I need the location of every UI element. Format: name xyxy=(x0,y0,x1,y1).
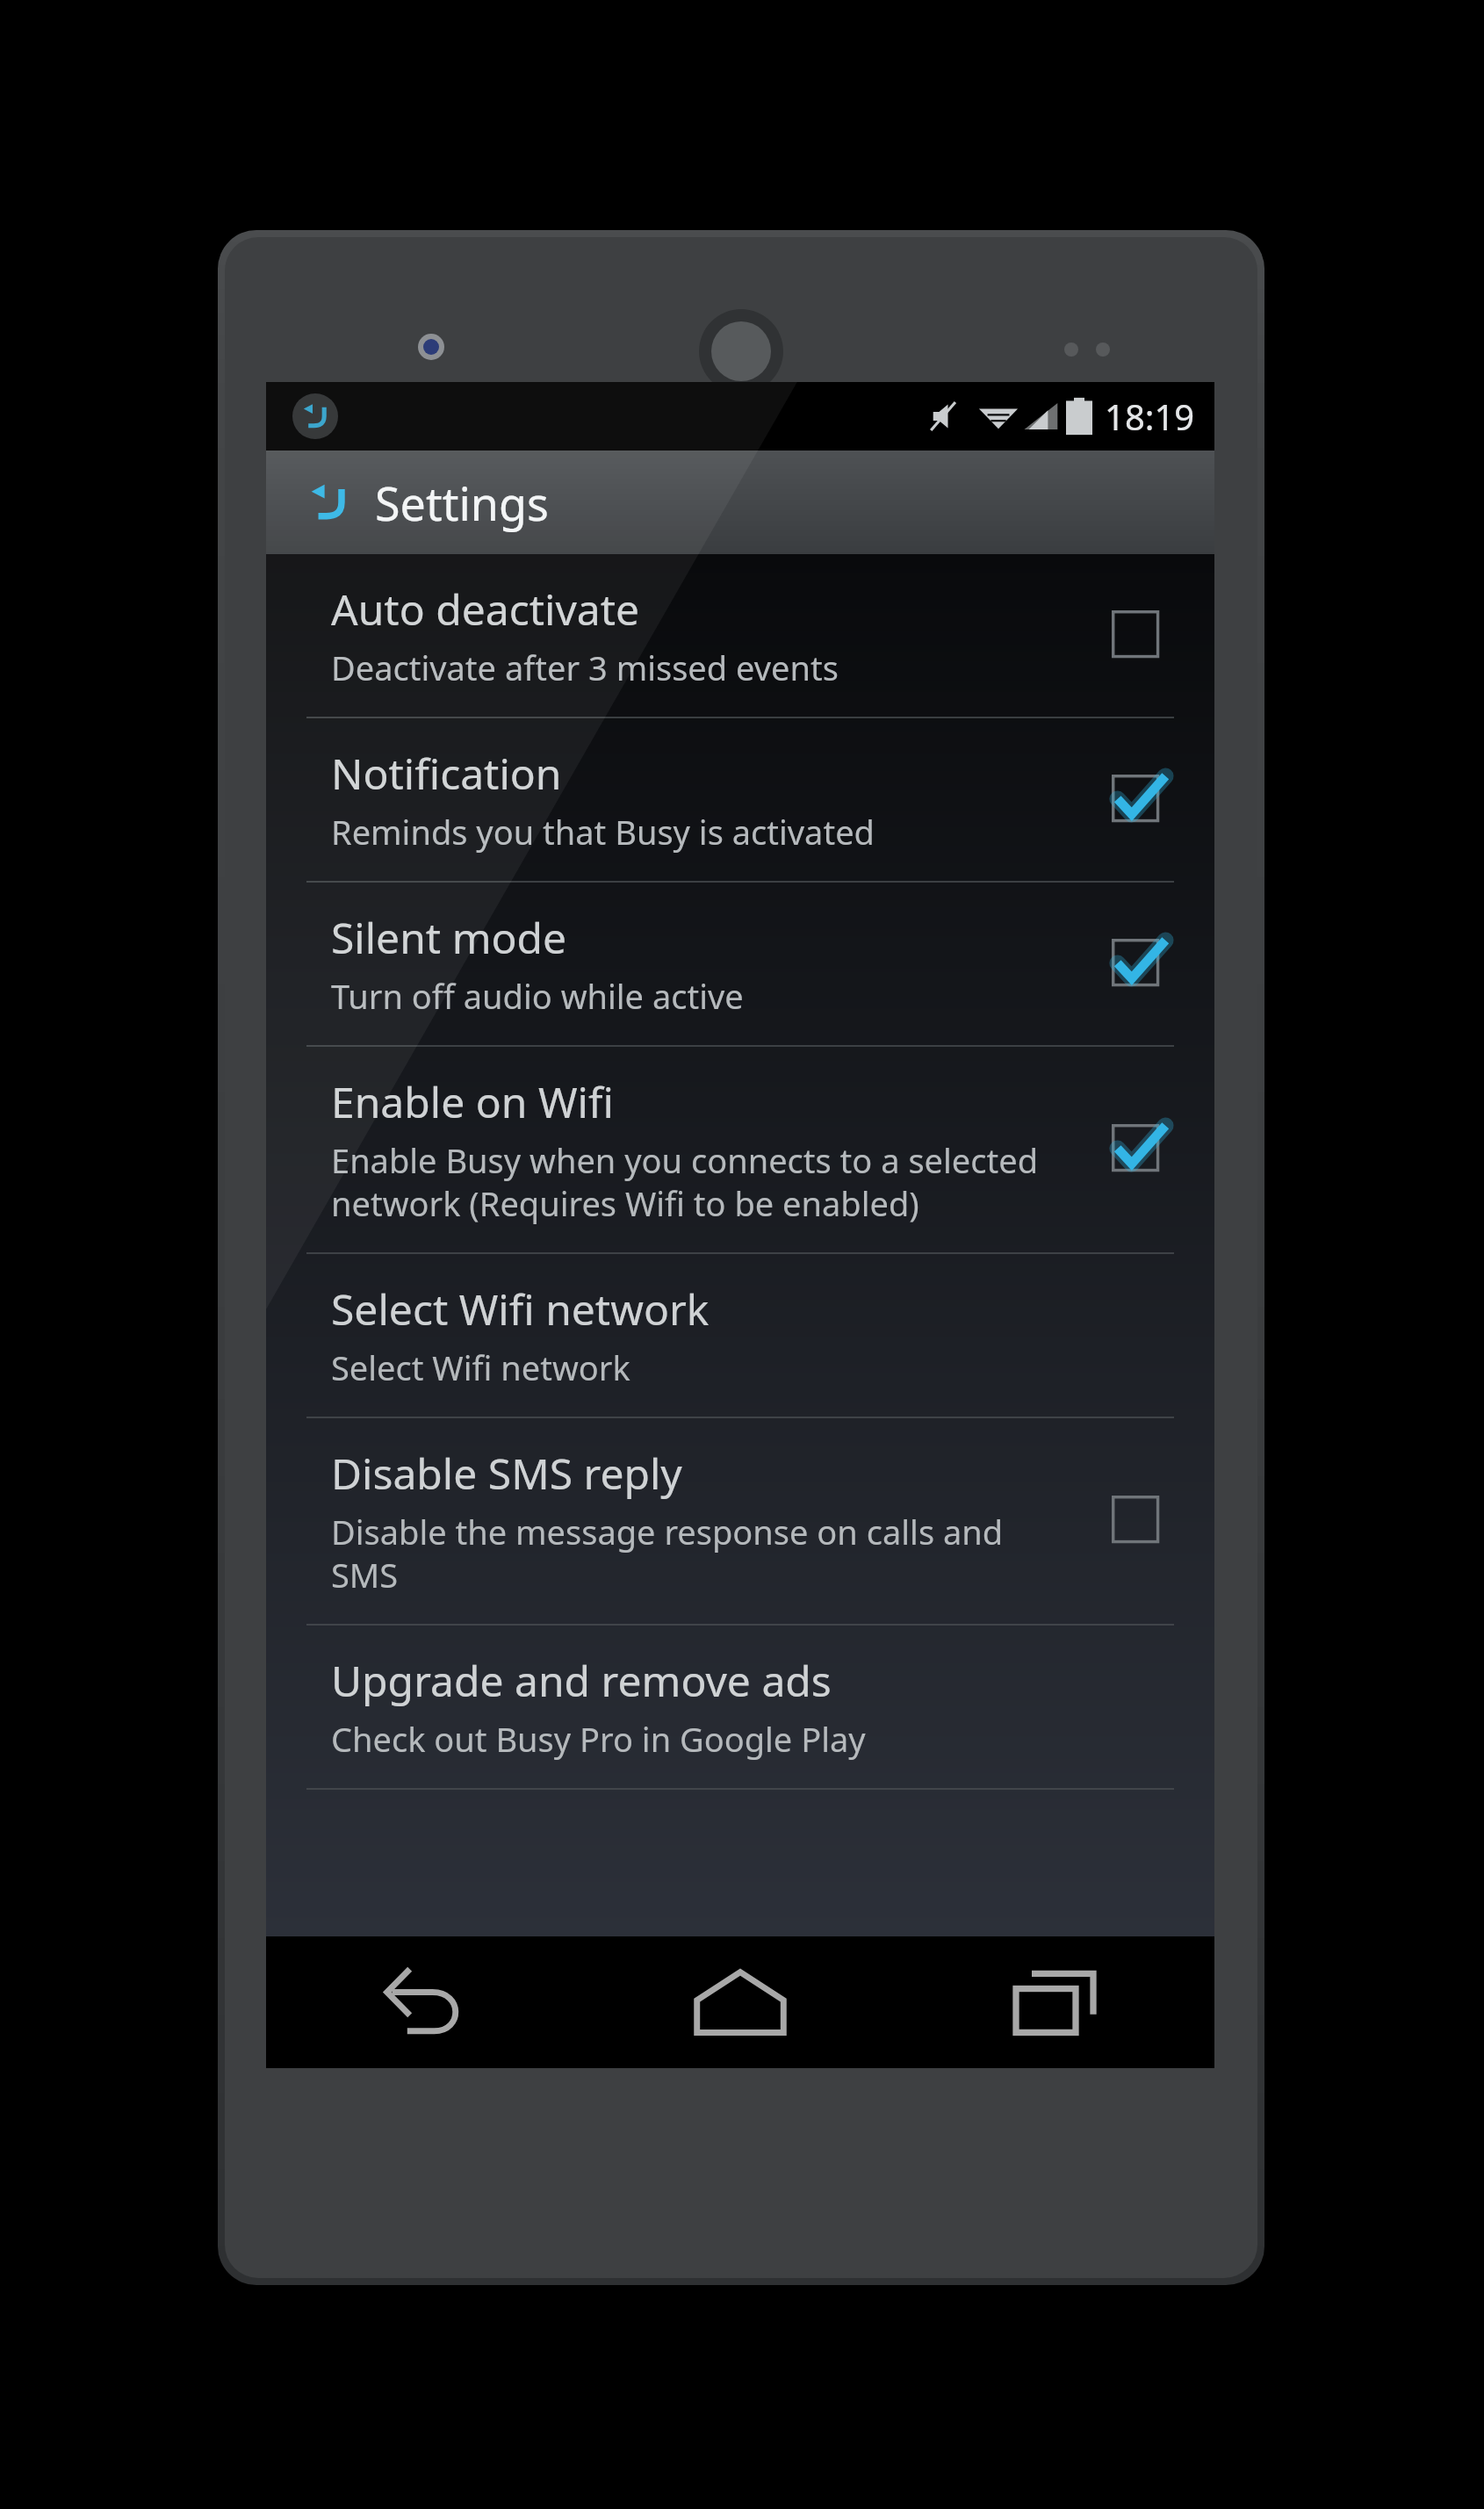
button[interactable]: Home xyxy=(582,1936,898,2068)
staticText: Enable Busy when you connects to a selec… xyxy=(331,1137,1074,1226)
button[interactable]: Silent mode xyxy=(1104,931,1171,998)
button[interactable]: Enable on Wifi xyxy=(1104,1116,1171,1183)
button[interactable]: Disable SMS reply xyxy=(266,1418,1214,1624)
staticText: Select Wifi network xyxy=(331,1280,710,1337)
staticText: Select Wifi network xyxy=(331,1345,630,1390)
staticText: Turn off audio while active xyxy=(331,973,744,1019)
staticText: 18:19 xyxy=(1105,393,1195,440)
staticText: Enable on Wifi xyxy=(331,1073,614,1130)
button[interactable]: Navigate up xyxy=(305,479,352,526)
button[interactable]: Auto deactivate xyxy=(266,554,1214,717)
staticText: Settings xyxy=(375,472,549,534)
staticText: Disable the message response on calls an… xyxy=(331,1509,1074,1597)
button[interactable]: Back xyxy=(266,1936,582,2068)
staticText: Reminds you that Busy is activated xyxy=(331,809,875,854)
button[interactable]: Disable SMS reply xyxy=(1104,1488,1171,1554)
button[interactable]: Enable on Wifi xyxy=(266,1047,1214,1252)
staticText: Upgrade and remove ads xyxy=(331,1652,832,1709)
button[interactable]: Notification xyxy=(266,718,1214,881)
staticText: Notification xyxy=(331,745,562,802)
button[interactable]: Select Wifi network xyxy=(266,1254,1214,1417)
button[interactable]: Recent apps xyxy=(898,1936,1214,2068)
button[interactable]: Auto deactivate xyxy=(1104,602,1171,669)
staticText: Silent mode xyxy=(331,909,567,966)
button[interactable]: Navigate up xyxy=(266,451,1214,554)
staticText: Disable SMS reply xyxy=(331,1445,682,1502)
staticText: Deactivate after 3 missed events xyxy=(331,645,839,690)
button[interactable]: Upgrade and remove ads xyxy=(266,1626,1214,1788)
staticText: Check out Busy Pro in Google Play xyxy=(331,1716,866,1762)
button[interactable]: Notification xyxy=(1104,767,1171,833)
staticText: Auto deactivate xyxy=(331,580,640,638)
button[interactable]: Silent mode xyxy=(266,883,1214,1045)
